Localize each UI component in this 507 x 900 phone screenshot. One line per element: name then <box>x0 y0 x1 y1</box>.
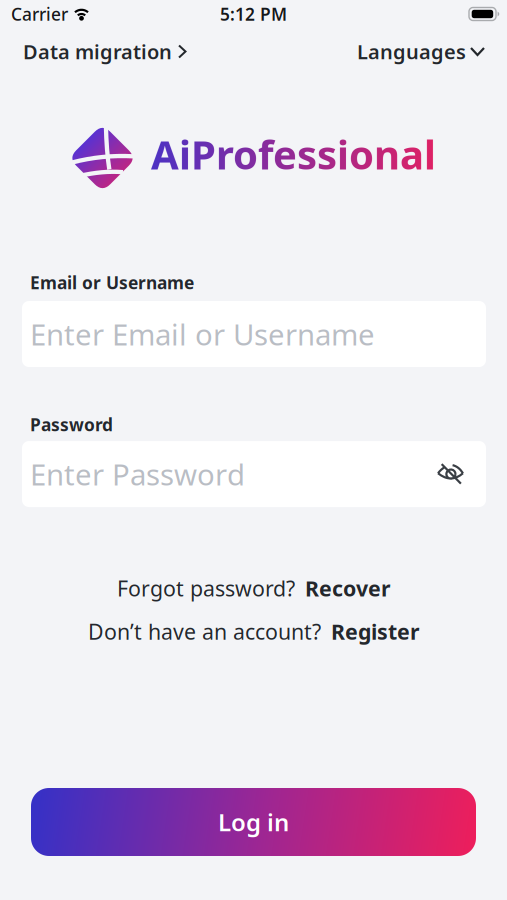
staticText: Forgot password? <box>117 574 295 602</box>
staticText: Data migration <box>23 38 172 65</box>
staticText: Enter Password <box>30 455 245 494</box>
staticText: Log in <box>218 806 289 838</box>
staticText: Languages <box>357 38 466 65</box>
button[interactable]: Forgot password? <box>117 574 391 602</box>
button[interactable]: Data migration <box>23 38 185 65</box>
staticText: Don’t have an account? <box>88 617 321 646</box>
staticText: Enter Email or Username <box>30 314 375 353</box>
staticText: Recover <box>305 574 391 602</box>
staticText: Email or Username <box>30 271 194 294</box>
staticText: Password <box>30 413 113 436</box>
button[interactable]: Enter Email or Username <box>22 301 486 367</box>
staticText: Carrier <box>11 2 68 25</box>
button[interactable]: Don’t have an account? <box>88 617 420 646</box>
staticText: Register <box>331 617 420 646</box>
button[interactable]: Log in <box>31 788 476 856</box>
button[interactable]: Enter Password <box>22 441 486 507</box>
staticText: 5:12 PM <box>220 2 287 25</box>
button[interactable]: Languages <box>357 38 484 65</box>
